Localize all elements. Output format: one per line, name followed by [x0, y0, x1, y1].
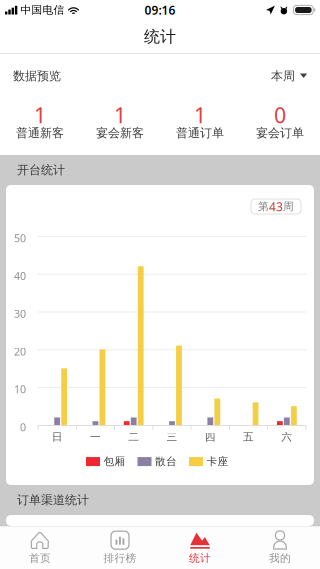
staticText: 一 [90, 430, 101, 443]
staticText: 日 [52, 430, 63, 443]
staticText: 50 [14, 231, 26, 245]
staticText: 0 [20, 420, 26, 434]
button[interactable]: 第 [251, 199, 301, 214]
staticText: 09:16 [144, 2, 175, 18]
staticText: 订单渠道统计 [17, 493, 89, 507]
staticText: 统计 [144, 27, 176, 47]
staticText: 1 [114, 101, 126, 129]
staticText: 普通新客 [16, 126, 64, 140]
staticText: 首页 [29, 552, 51, 565]
button[interactable]: 散台 [137, 455, 177, 468]
button[interactable]: 排行榜 [80, 526, 160, 569]
button[interactable]: 首页 [0, 526, 80, 569]
staticText: 三 [166, 430, 177, 443]
staticText: 我的 [269, 552, 291, 565]
staticText: 10 [14, 382, 26, 396]
staticText: 六 [281, 430, 292, 443]
button[interactable]: 包厢 [86, 455, 125, 468]
button[interactable]: 0 [240, 104, 320, 140]
staticText: 排行榜 [103, 552, 136, 565]
staticText: 20 [14, 344, 26, 358]
staticText: 包厢 [103, 455, 125, 468]
staticText: 数据预览 [13, 69, 61, 83]
staticText: 卡座 [206, 455, 228, 468]
button[interactable]: 1 [0, 104, 80, 140]
button[interactable]: 1 [160, 104, 240, 140]
staticText: 30 [14, 306, 26, 321]
staticText: 第 [258, 200, 269, 213]
staticText: 五 [243, 430, 254, 443]
button[interactable]: 本周 [271, 64, 308, 88]
button[interactable]: 统计 [160, 526, 240, 569]
button[interactable]: 卡座 [189, 455, 228, 468]
staticText: 宴会订单 [256, 126, 304, 140]
staticText: 统计 [189, 552, 211, 565]
staticText: 0 [274, 101, 286, 129]
staticText: 43 [269, 198, 283, 214]
staticText: 普通订单 [176, 126, 224, 140]
staticText: 开台统计 [17, 163, 65, 177]
staticText: 宴会新客 [96, 126, 144, 140]
staticText: 本周 [271, 69, 295, 83]
staticText: 1 [34, 101, 46, 129]
staticText: 散台 [155, 455, 177, 468]
button[interactable]: 我的 [240, 526, 320, 569]
staticText: 中国电信 [20, 3, 64, 16]
staticText: 二 [128, 430, 139, 443]
button[interactable]: 1 [80, 104, 160, 140]
staticText: 四 [205, 430, 216, 443]
staticText: 40 [14, 269, 26, 283]
staticText: 周 [283, 200, 294, 213]
staticText: 1 [194, 101, 206, 129]
